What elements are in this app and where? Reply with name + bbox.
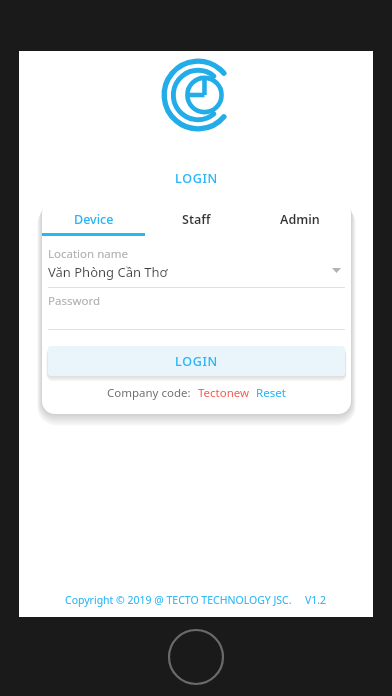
button[interactable]: Admin (248, 206, 351, 232)
staticText: Device (74, 211, 114, 228)
button[interactable]: Device (42, 206, 145, 232)
staticText: Admin (280, 211, 320, 228)
staticText: Location name (48, 246, 128, 262)
other: Tecto Technology logo (160, 57, 236, 133)
staticText: Staff (182, 211, 211, 228)
button[interactable]: Location name (48, 245, 345, 288)
staticText: Tectonew (198, 385, 250, 401)
staticText: Copyright © 2019 @ TECTO TECHNOLOGY JSC. (65, 593, 292, 607)
button[interactable]: LOGIN (48, 346, 345, 376)
button[interactable]: Tectonew (198, 385, 250, 401)
staticText: V1.2 (305, 593, 327, 607)
staticText: LOGIN (175, 170, 218, 187)
staticText: Reset (256, 385, 286, 401)
staticText: LOGIN (175, 353, 218, 370)
button[interactable]: Staff (145, 206, 248, 232)
button[interactable]: Reset (256, 385, 286, 401)
button[interactable]: Password (48, 292, 345, 328)
staticText: Password (48, 293, 101, 309)
staticText: Văn Phòng Cần Thơ (48, 263, 168, 281)
staticText: Company code: (107, 385, 191, 401)
